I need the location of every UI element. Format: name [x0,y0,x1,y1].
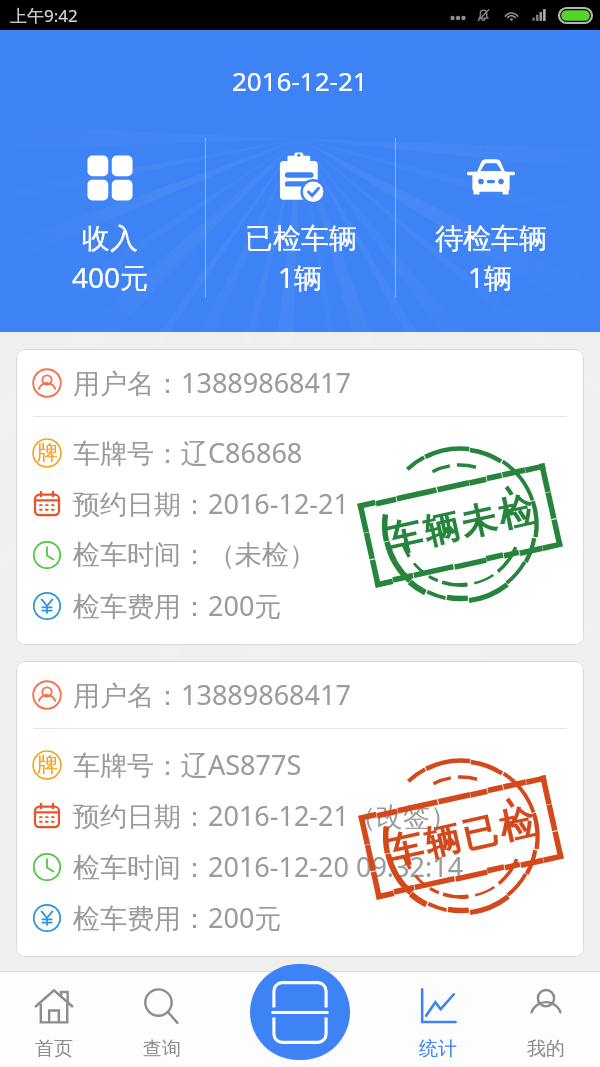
staticText: 1辆 [278,258,323,296]
button[interactable]: 已检车辆 [206,147,395,296]
staticText: 用户名：13889868417 [73,364,351,401]
staticText: 查询 [143,1037,181,1061]
staticText: 上午9:42 [10,4,78,27]
button[interactable]: 待检车辆 [396,147,585,296]
button[interactable]: 首页 [0,972,108,1061]
staticText: 首页 [35,1037,73,1061]
staticText: 牌 [37,752,58,778]
button[interactable]: 统计 [384,972,492,1061]
button[interactable]: 查询 [108,972,216,1061]
staticText: 检车费用：200元 [73,587,282,624]
button[interactable]: 我的 [492,972,600,1061]
staticText: 2016-12-21 [232,63,368,98]
staticText: 预约日期：2016-12-21 [73,485,349,522]
button[interactable]: 用户名：13889868417 [16,661,584,957]
staticText: 400元 [72,258,149,296]
staticText: 我的 [527,1037,565,1061]
staticText: 预约日期：2016-12-21（改签） [73,797,457,834]
staticText: 待检车辆 [435,221,547,256]
staticText: 车辆未检 [381,487,539,563]
staticText: 检车时间：2016-12-20 09:32:14 [73,848,464,885]
staticText: 车辆已检 [382,799,540,875]
staticText: 车牌号：辽AS877S [73,746,302,783]
staticText: 检车时间：（未检） [73,538,316,572]
button[interactable]: 用户名：13889868417 [16,349,584,645]
button[interactable]: 收入 [15,147,205,296]
button[interactable]: Scan [250,964,350,1060]
staticText: 1辆 [468,258,513,296]
staticText: 收入 [82,221,138,256]
staticText: 检车费用：200元 [73,899,282,936]
staticText: 统计 [419,1037,457,1061]
staticText: 用户名：13889868417 [73,676,351,713]
staticText: 车牌号：辽C86868 [73,434,303,471]
staticText: 牌 [37,440,58,466]
staticText: 已检车辆 [245,221,357,256]
